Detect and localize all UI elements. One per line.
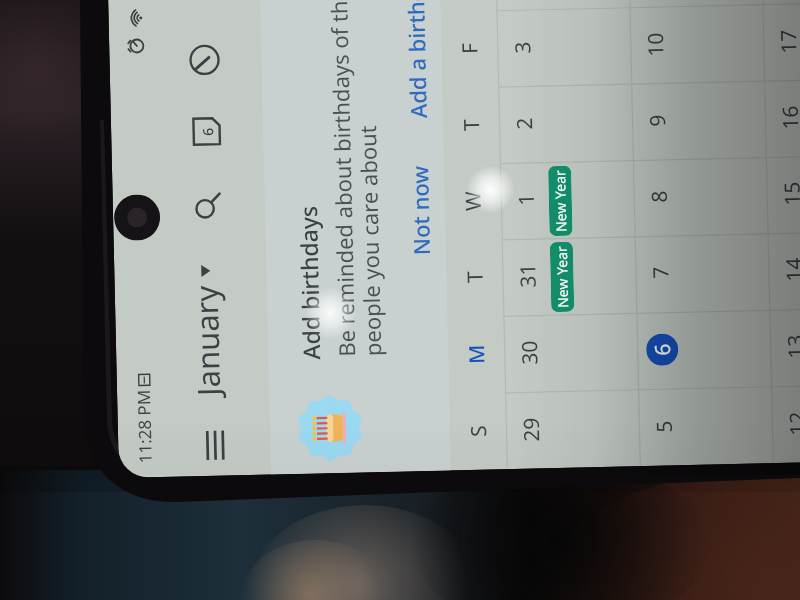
- staticText: 3: [508, 40, 537, 54]
- button[interactable]: 30: [503, 312, 638, 392]
- staticText: 11:28 PM: [132, 389, 157, 464]
- button[interactable]: 17: [762, 1, 800, 80]
- button[interactable]: 8: [633, 156, 768, 235]
- button[interactable]: 2: [498, 83, 633, 162]
- staticText: 30: [515, 339, 545, 365]
- button[interactable]: New Year: [550, 242, 574, 312]
- button[interactable]: 9: [631, 80, 766, 159]
- staticText: T: [460, 270, 490, 283]
- staticText: 17: [774, 28, 800, 54]
- staticText: 29: [517, 416, 546, 442]
- staticText: 16: [776, 104, 800, 130]
- staticText: 14: [779, 256, 800, 282]
- staticText: Add a birthday: [399, 0, 433, 118]
- button[interactable]: 29: [505, 389, 640, 469]
- staticText: F: [455, 43, 484, 54]
- staticText: New Year: [552, 246, 572, 308]
- button[interactable]: 11: [628, 0, 762, 7]
- staticText: M: [462, 343, 491, 364]
- button[interactable]: Open navigation menu: [187, 417, 244, 474]
- staticText: 6: [648, 342, 677, 356]
- staticText: 13: [781, 333, 800, 359]
- staticText: January: [185, 284, 229, 396]
- staticText: 31: [513, 262, 543, 288]
- button[interactable]: Add a birthday: [393, 0, 439, 129]
- button[interactable]: Search: [181, 179, 234, 232]
- staticText: 9: [643, 113, 672, 127]
- staticText: S: [464, 424, 493, 437]
- button[interactable]: 16: [764, 77, 800, 156]
- staticText: Be reminded about birthdays of the: [323, 0, 361, 357]
- staticText: 5: [650, 419, 679, 433]
- staticText: Not now: [404, 165, 436, 255]
- staticText: 2: [510, 116, 539, 130]
- button[interactable]: 31: [502, 235, 636, 315]
- button[interactable]: 13: [769, 306, 800, 386]
- staticText: New Year: [550, 170, 570, 232]
- staticText: 7: [646, 265, 676, 279]
- button[interactable]: Switch calendar view: [178, 33, 231, 87]
- button[interactable]: 7: [635, 232, 769, 312]
- staticText: W: [459, 191, 488, 211]
- staticText: Add birthdays: [292, 205, 326, 360]
- button[interactable]: 3: [496, 7, 631, 86]
- button[interactable]: January: [180, 260, 233, 400]
- staticText: people you care about: [352, 125, 387, 356]
- staticText: 12: [783, 410, 800, 436]
- staticText: 6: [198, 127, 217, 136]
- button[interactable]: 14: [768, 229, 800, 309]
- button[interactable]: Not now: [398, 155, 442, 265]
- button[interactable]: 1: [500, 159, 635, 238]
- button[interactable]: 12: [771, 383, 800, 463]
- staticText: 1: [512, 192, 541, 206]
- button[interactable]: 6: [636, 309, 771, 389]
- button[interactable]: 18: [761, 0, 800, 4]
- button[interactable]: 10: [629, 4, 764, 83]
- staticText: 8: [645, 189, 674, 203]
- button[interactable]: Jump to today: [180, 105, 233, 159]
- staticText: 10: [641, 31, 671, 57]
- button[interactable]: New Year: [548, 166, 573, 236]
- button[interactable]: 5: [638, 386, 773, 466]
- button[interactable]: 15: [766, 153, 800, 232]
- staticText: 15: [777, 180, 800, 206]
- button[interactable]: 4: [495, 0, 629, 10]
- staticText: T: [457, 119, 486, 131]
